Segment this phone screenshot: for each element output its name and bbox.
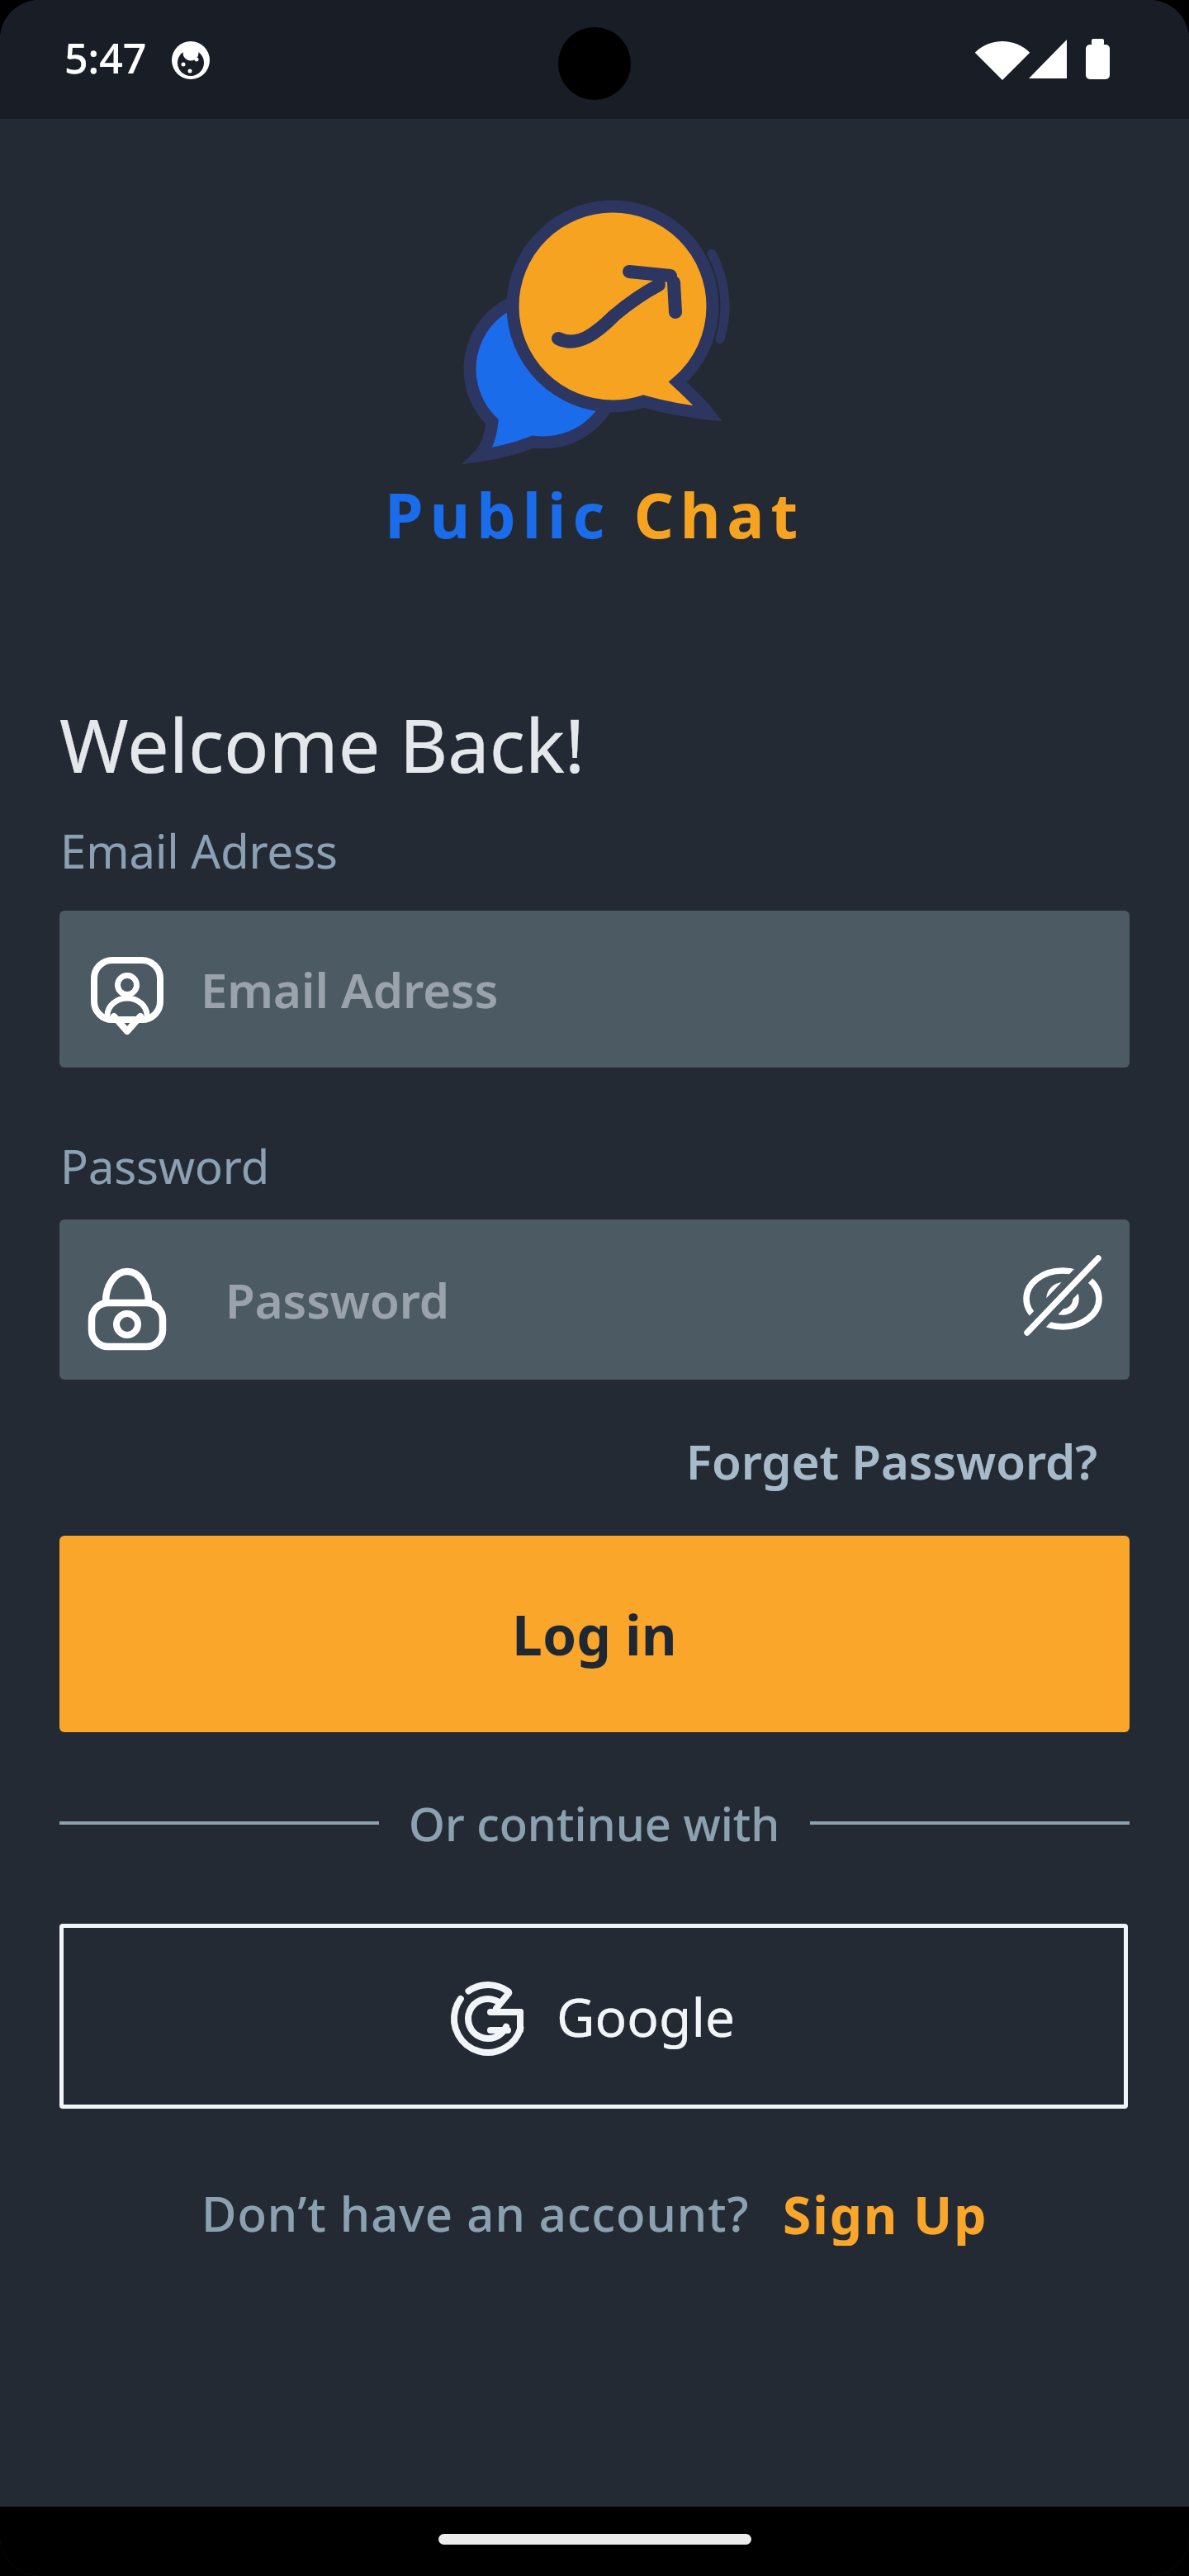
staticText: Email Adress [201, 957, 499, 1022]
staticText: 5:47 [64, 30, 147, 86]
staticText: Email Adress [60, 819, 338, 882]
staticText: Password [60, 1134, 270, 1197]
button[interactable]: Forget Password? [0, 1428, 1097, 1494]
staticText: Welcome Back! [59, 694, 585, 795]
button[interactable]: Sign Up [783, 2180, 988, 2246]
staticText: Public Chat [0, 472, 1189, 556]
staticText: Don’t have an account? [201, 2181, 750, 2246]
staticText: Or continue with [409, 1792, 780, 1854]
button[interactable]: Password [59, 1219, 1130, 1380]
staticText: Log in [512, 1597, 677, 1671]
button[interactable]: Google [59, 1924, 1128, 2109]
button[interactable]: Log in [59, 1536, 1130, 1732]
staticText: Password [225, 1267, 450, 1333]
staticText: Google [557, 1981, 735, 2053]
button[interactable]: Email Adress [59, 911, 1130, 1068]
